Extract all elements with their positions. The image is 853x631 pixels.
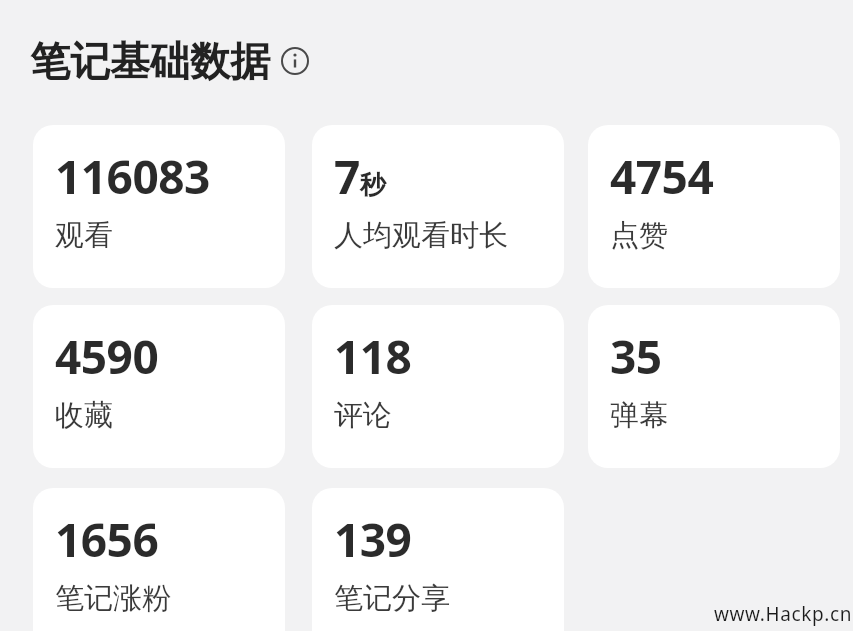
button[interactable]: 1656 xyxy=(33,488,285,631)
staticText: 点赞 xyxy=(610,217,668,254)
staticText: 118 xyxy=(334,325,412,388)
staticText: www.Hackp.cn xyxy=(714,601,852,627)
staticText: 4590 xyxy=(55,325,159,388)
staticText: 笔记涨粉 xyxy=(55,580,171,617)
staticText: 弹幕 xyxy=(610,397,668,434)
button[interactable]: 35 xyxy=(588,305,840,468)
button[interactable]: 116083 xyxy=(33,125,285,288)
staticText: 139 xyxy=(334,508,412,571)
button[interactable]: 7秒 xyxy=(312,125,564,288)
button[interactable]: 4754 xyxy=(588,125,840,288)
button[interactable]: 4590 xyxy=(33,305,285,468)
staticText: 1656 xyxy=(55,508,159,571)
staticText: 观看 xyxy=(55,217,113,254)
button[interactable]: 139 xyxy=(312,488,564,631)
staticText: 评论 xyxy=(334,397,392,434)
staticText: 7秒 xyxy=(334,145,386,208)
staticText: 收藏 xyxy=(55,397,113,434)
staticText: 笔记基础数据 xyxy=(30,36,270,86)
staticText: 4754 xyxy=(610,145,714,208)
button[interactable]: 关于笔记基础数据 xyxy=(280,46,310,76)
button[interactable]: 118 xyxy=(312,305,564,468)
staticText: 35 xyxy=(610,325,662,388)
staticText: 116083 xyxy=(55,145,210,208)
staticText: 笔记分享 xyxy=(334,580,450,617)
staticText: 人均观看时长 xyxy=(334,217,508,254)
